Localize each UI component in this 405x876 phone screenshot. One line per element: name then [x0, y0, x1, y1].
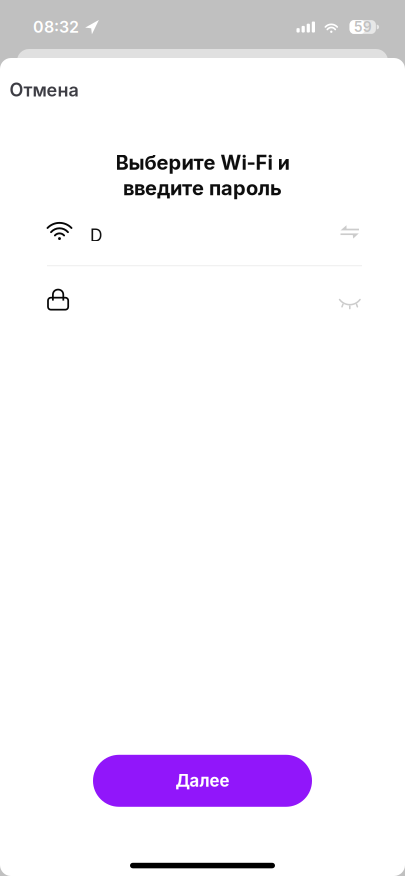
button[interactable]: Отмена — [0, 68, 94, 112]
staticText: Далее — [175, 771, 229, 791]
staticText: Отмена — [9, 79, 78, 101]
staticText: 59 — [354, 18, 372, 35]
button[interactable]: Показать пароль — [328, 288, 362, 312]
staticText: Выберите Wi-Fi и — [115, 150, 289, 174]
button[interactable]: Выбрать другую сеть — [328, 222, 362, 243]
staticText: 08:32 — [33, 17, 79, 37]
staticText: D — [90, 225, 103, 246]
staticText: введите пароль — [123, 176, 282, 200]
button[interactable]: Далее — [93, 755, 312, 807]
